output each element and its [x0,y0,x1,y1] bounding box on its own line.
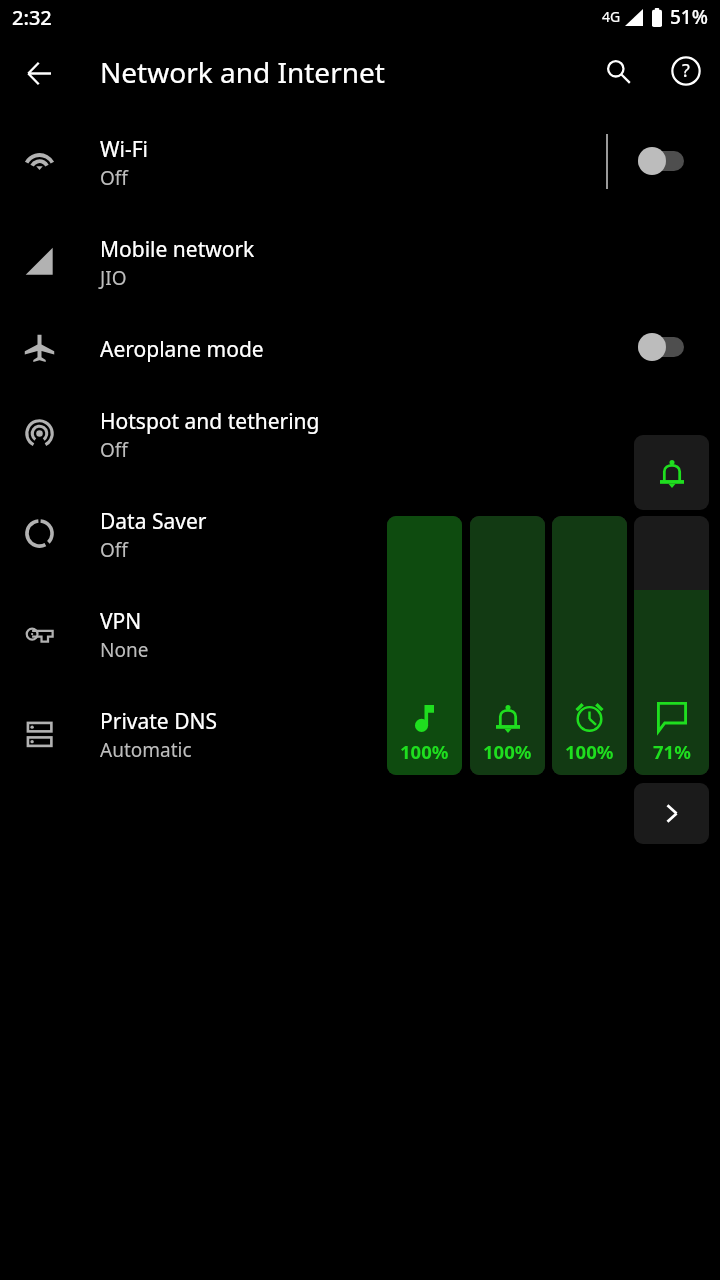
staticText: VPN [100,607,142,636]
staticText: 100% [565,739,614,764]
staticText: Automatic [100,737,192,763]
staticText: None [100,637,149,663]
button[interactable]: Private DNS [0,683,720,783]
staticText: Aeroplane mode [100,335,264,364]
button[interactable]: Search [594,47,642,95]
staticText: Hotspot and tethering [100,407,320,436]
staticText: Private DNS [100,707,217,736]
button[interactable]: Back [15,49,63,97]
button[interactable]: Ringer mode [634,435,709,510]
button[interactable]: Volume 71% [634,516,709,775]
staticText: JIO [100,265,127,291]
button[interactable]: Aeroplane mode [0,311,720,383]
button[interactable]: Mobile network [0,211,720,311]
staticText: 51% [670,4,708,30]
staticText: Off [100,537,128,563]
button[interactable]: Data Saver [0,483,720,583]
button[interactable]: Help [662,47,710,95]
staticText: Off [100,437,128,463]
staticText: Mobile network [100,235,255,264]
button[interactable]: Volume 100% [387,516,462,775]
button[interactable]: Volume 100% [552,516,627,775]
staticText: Network and Internet [100,53,385,91]
button[interactable]: Hotspot and tethering [0,383,720,483]
button[interactable]: Expand volume panel [634,783,709,844]
button[interactable]: VPN [0,583,720,683]
staticText: 2:32 [12,4,52,31]
button[interactable]: Volume 100% [470,516,545,775]
staticText: 4G [602,7,621,26]
button[interactable]: Aeroplane mode switch [622,323,686,371]
staticText: 71% [653,739,691,764]
button[interactable]: Wi-Fi switch [622,137,686,185]
staticText: 100% [483,739,532,764]
staticText: Off [100,165,128,191]
staticText: Wi-Fi [100,135,149,164]
staticText: Data Saver [100,507,207,536]
staticText: ? [682,58,690,83]
button[interactable]: Wi-Fi [0,111,720,211]
staticText: 100% [400,739,449,764]
